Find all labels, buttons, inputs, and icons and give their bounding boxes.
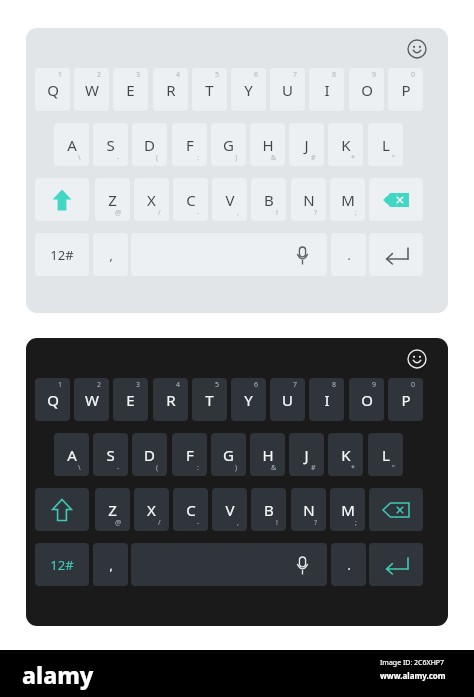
button[interactable]: Z [95,178,130,221]
button[interactable]: A [54,433,89,476]
staticText: U [282,390,293,410]
button[interactable]: F [172,433,207,476]
staticText: 0 [411,380,416,390]
button[interactable]: Voice input [291,554,313,576]
staticText: ( [156,153,159,163]
staticText: W [85,390,99,410]
button[interactable]: Shift [35,488,89,531]
button[interactable]: S [93,433,128,476]
button[interactable]: Symbols [35,543,89,586]
button[interactable]: U [270,378,305,421]
button[interactable]: Q [35,68,70,111]
button[interactable]: Y [231,68,266,111]
staticText: Q [47,390,59,410]
button[interactable]: Emoji [400,32,434,66]
button[interactable]: E [113,378,148,421]
button[interactable]: Symbols [35,233,89,276]
button[interactable]: L [368,433,403,476]
button[interactable]: Space [131,233,327,276]
button[interactable]: N [291,488,326,531]
button[interactable]: J [289,123,324,166]
button[interactable]: O [349,68,384,111]
button[interactable]: M [330,178,365,221]
button[interactable]: Y [231,378,266,421]
button[interactable]: C [173,488,208,531]
button[interactable]: U [270,68,305,111]
button[interactable]: D [132,433,167,476]
staticText: A [67,135,77,155]
button[interactable]: T [192,378,227,421]
button[interactable]: S [93,123,128,166]
button[interactable]: I [309,378,344,421]
button[interactable]: O [349,378,384,421]
button[interactable]: J [289,433,324,476]
button[interactable]: E [113,68,148,111]
button[interactable]: Backspace [369,488,423,531]
button[interactable]: B [251,178,286,221]
button[interactable]: Period [331,233,366,276]
staticText: Y [244,80,253,100]
staticText: , [237,518,239,528]
button[interactable]: W [74,378,109,421]
button[interactable]: G [211,123,246,166]
staticText: 9 [372,380,377,390]
staticText: B [264,500,274,520]
button[interactable]: M [330,488,365,531]
button[interactable]: Shift [35,178,89,221]
staticText: D [144,445,155,465]
button[interactable]: D [132,123,167,166]
staticText: M [341,190,355,210]
button[interactable]: Enter [369,233,423,276]
button[interactable]: Emoji [400,342,434,376]
button[interactable]: X [134,488,169,531]
button[interactable]: Backspace [369,178,423,221]
button[interactable]: N [291,178,326,221]
button[interactable]: T [192,68,227,111]
staticText: , [109,557,113,573]
staticText: I [324,80,330,100]
button[interactable]: F [172,123,207,166]
button[interactable]: X [134,178,169,221]
button[interactable]: W [74,68,109,111]
button[interactable]: P [388,378,423,421]
button[interactable]: C [173,178,208,221]
button[interactable]: P [388,68,423,111]
button[interactable]: Comma [93,233,128,276]
staticText: J [304,135,309,155]
button[interactable]: K [328,123,363,166]
button[interactable]: R [153,68,188,111]
button[interactable]: H [250,433,285,476]
button[interactable]: L [368,123,403,166]
staticText: L [382,445,390,465]
button[interactable]: V [212,178,247,221]
staticText: 12# [50,556,74,574]
staticText: @ [115,518,122,528]
button[interactable]: K [328,433,363,476]
staticText: B [264,190,274,210]
button[interactable]: Period [331,543,366,586]
staticText: . [347,557,351,573]
button[interactable]: Space [131,543,327,586]
button[interactable]: A [54,123,89,166]
staticText: , [237,208,239,218]
staticText: V [225,500,235,520]
button[interactable]: Comma [93,543,128,586]
staticText: ? [314,518,318,528]
staticText: C [186,190,196,210]
button[interactable]: B [251,488,286,531]
button[interactable]: Enter [369,543,423,586]
staticText: ) [235,153,238,163]
button[interactable]: G [211,433,246,476]
staticText: H [262,445,274,465]
staticText: . [347,247,351,263]
button[interactable]: Q [35,378,70,421]
button[interactable]: V [212,488,247,531]
button[interactable]: I [309,68,344,111]
button[interactable]: H [250,123,285,166]
staticText: 8 [332,70,337,80]
staticText: / [158,208,161,218]
staticText: J [304,445,309,465]
button[interactable]: Voice input [291,244,313,266]
button[interactable]: R [153,378,188,421]
button[interactable]: Z [95,488,130,531]
